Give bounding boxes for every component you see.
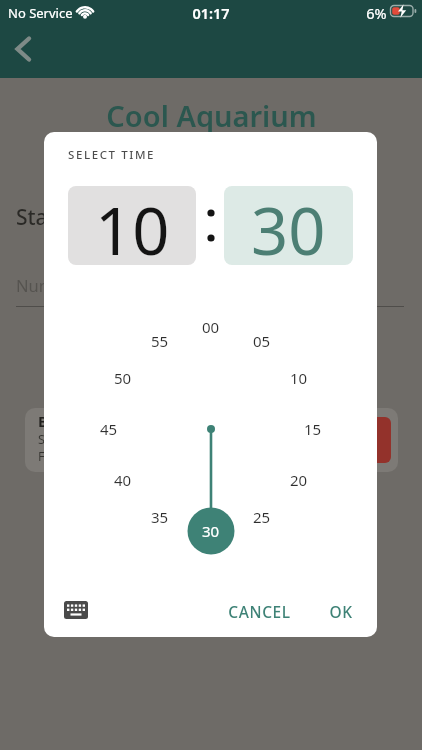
staticText: 01:17	[192, 3, 230, 23]
staticText: 6%	[366, 3, 387, 23]
button[interactable]: CANCEL	[222, 600, 296, 622]
staticText: Start Time	[16, 203, 96, 229]
button[interactable]: 15	[297, 418, 329, 440]
button[interactable]: OK	[321, 600, 361, 622]
staticText: 10	[95, 186, 170, 265]
button[interactable]: 10	[68, 186, 196, 265]
staticText: Starts at 08:00	[38, 431, 123, 447]
staticText: 10	[290, 368, 308, 388]
staticText: OK	[329, 601, 353, 622]
staticText: 45	[100, 419, 118, 439]
staticText: 05	[253, 331, 271, 351]
staticText: Number of fish	[16, 274, 133, 296]
button[interactable]: 00	[195, 316, 227, 338]
button[interactable]: 55	[144, 330, 176, 352]
button[interactable]: 20	[283, 469, 315, 491]
button[interactable]: 35	[144, 506, 176, 528]
button[interactable]: 45	[93, 418, 125, 440]
button[interactable]: 25	[246, 506, 278, 528]
staticText: 30	[202, 521, 220, 541]
staticText: 15	[304, 419, 322, 439]
staticText: 50	[114, 368, 132, 388]
button[interactable]: 50	[107, 367, 139, 389]
button[interactable]: 05	[246, 330, 278, 352]
staticText: 25	[253, 507, 271, 527]
staticText: 30	[251, 186, 326, 265]
staticText: No Service	[8, 4, 73, 22]
staticText: Breakfast	[38, 411, 111, 431]
staticText: Feeds 2 times	[38, 448, 119, 464]
button[interactable]: 30	[224, 186, 353, 265]
staticText: 00	[202, 317, 220, 337]
staticText: CANCEL	[228, 601, 291, 622]
staticText: 35	[151, 507, 169, 527]
button[interactable]: 40	[107, 469, 139, 491]
button[interactable]: 10	[283, 367, 315, 389]
button[interactable]: 30	[195, 520, 227, 542]
staticText: 40	[114, 470, 132, 490]
button[interactable]	[64, 600, 88, 620]
staticText: 20	[290, 470, 308, 490]
button[interactable]	[12, 34, 36, 64]
staticText: 55	[151, 331, 169, 351]
staticText: Cool Aquarium	[106, 96, 317, 132]
staticText: SELECT TIME	[68, 147, 156, 163]
